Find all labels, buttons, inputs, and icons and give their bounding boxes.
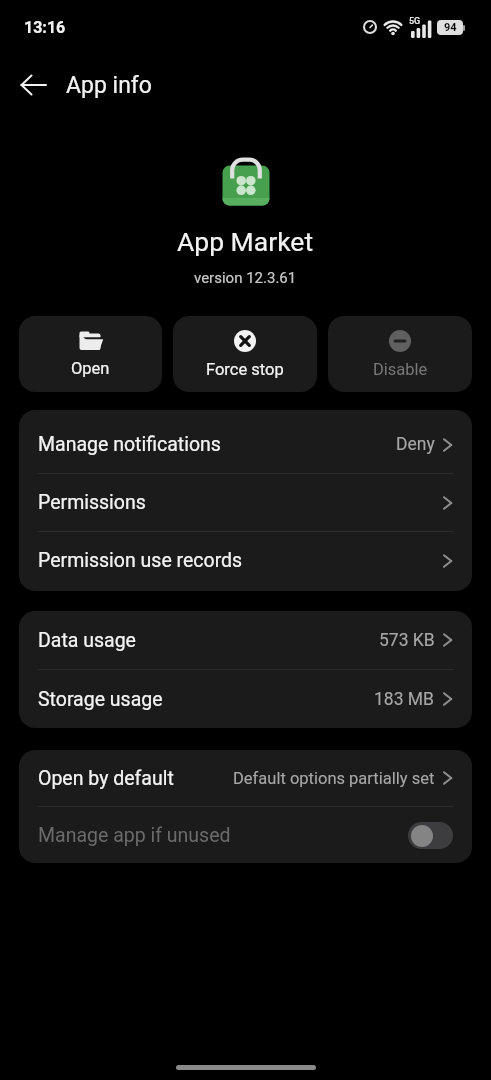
button[interactable]: Storage usage — [19, 670, 472, 728]
staticText: 94 — [444, 21, 457, 34]
button[interactable]: Manage notifications — [19, 416, 472, 473]
button[interactable]: Permissions — [19, 474, 472, 531]
staticText: Storage usage — [38, 688, 163, 711]
button[interactable]: Open by default — [19, 750, 472, 806]
button[interactable] — [20, 74, 47, 96]
staticText: Open — [71, 359, 110, 378]
button[interactable]: Force stop — [173, 316, 317, 392]
button[interactable]: Data usage — [19, 611, 472, 669]
staticText: Permission use records — [38, 549, 243, 572]
staticText: Disable — [373, 360, 428, 379]
staticText: Permissions — [38, 491, 146, 514]
staticText: version 12.3.61 — [194, 269, 297, 287]
staticText: Data usage — [38, 629, 136, 652]
staticText: Manage notifications — [38, 433, 221, 456]
button[interactable] — [408, 822, 453, 849]
button[interactable]: Permission use records — [19, 532, 472, 589]
staticText: Default options partially set — [233, 769, 435, 788]
button[interactable]: Open — [19, 316, 162, 392]
staticText: App info — [66, 72, 152, 99]
staticText: 573 KB — [379, 630, 435, 651]
staticText: Deny — [396, 434, 435, 455]
staticText: Open by default — [38, 767, 174, 790]
staticText: App Market — [177, 226, 314, 257]
staticText: Manage app if unused — [38, 824, 231, 847]
staticText: 5G — [409, 16, 421, 27]
button[interactable]: Disable — [328, 316, 472, 392]
staticText: 13:16 — [24, 18, 66, 37]
staticText: Force stop — [206, 360, 284, 379]
staticText: 183 MB — [374, 689, 435, 710]
button[interactable]: Manage app if unused — [19, 807, 472, 863]
